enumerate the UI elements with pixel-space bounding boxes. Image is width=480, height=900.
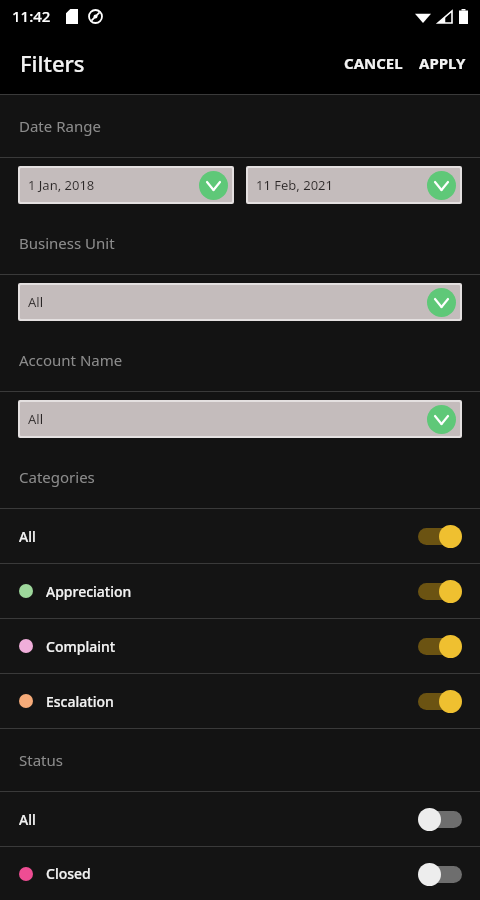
staticText: 11:42 [12,6,51,26]
button[interactable]: Escalation [0,674,480,728]
staticText: Escalation [46,692,114,711]
staticText: Business Unit [19,233,115,253]
other: Open dropdown [199,171,228,200]
button[interactable]: APPLY [411,43,480,83]
button[interactable]: 11 Feb, 2021 [248,168,460,202]
button[interactable]: Appreciation [0,564,480,618]
staticText: All [28,410,44,428]
button[interactable]: All [0,792,480,846]
staticText: 1 Jan, 2018 [28,176,95,194]
button[interactable]: All [20,285,460,319]
button[interactable]: All [0,509,480,563]
button[interactable]: Complaint [0,619,480,673]
staticText: All [28,293,44,311]
staticText: All [19,527,36,546]
button[interactable]: Closed [0,847,480,900]
staticText: Appreciation [46,582,132,601]
other: Open dropdown [427,288,456,317]
other: Open dropdown [427,405,456,434]
staticText: 11 Feb, 2021 [256,176,333,194]
staticText: Date Range [19,116,101,136]
staticText: CANCEL [344,53,403,73]
button[interactable]: All [20,402,460,436]
other: Open dropdown [427,171,456,200]
staticText: Closed [46,864,91,883]
staticText: Complaint [46,637,116,656]
button[interactable]: CANCEL [336,43,411,83]
staticText: All [19,810,36,829]
staticText: Categories [19,467,95,487]
staticText: Filters [20,48,85,78]
button[interactable]: 1 Jan, 2018 [20,168,232,202]
staticText: Account Name [19,350,123,370]
staticText: APPLY [419,53,466,73]
staticText: Status [19,750,63,770]
